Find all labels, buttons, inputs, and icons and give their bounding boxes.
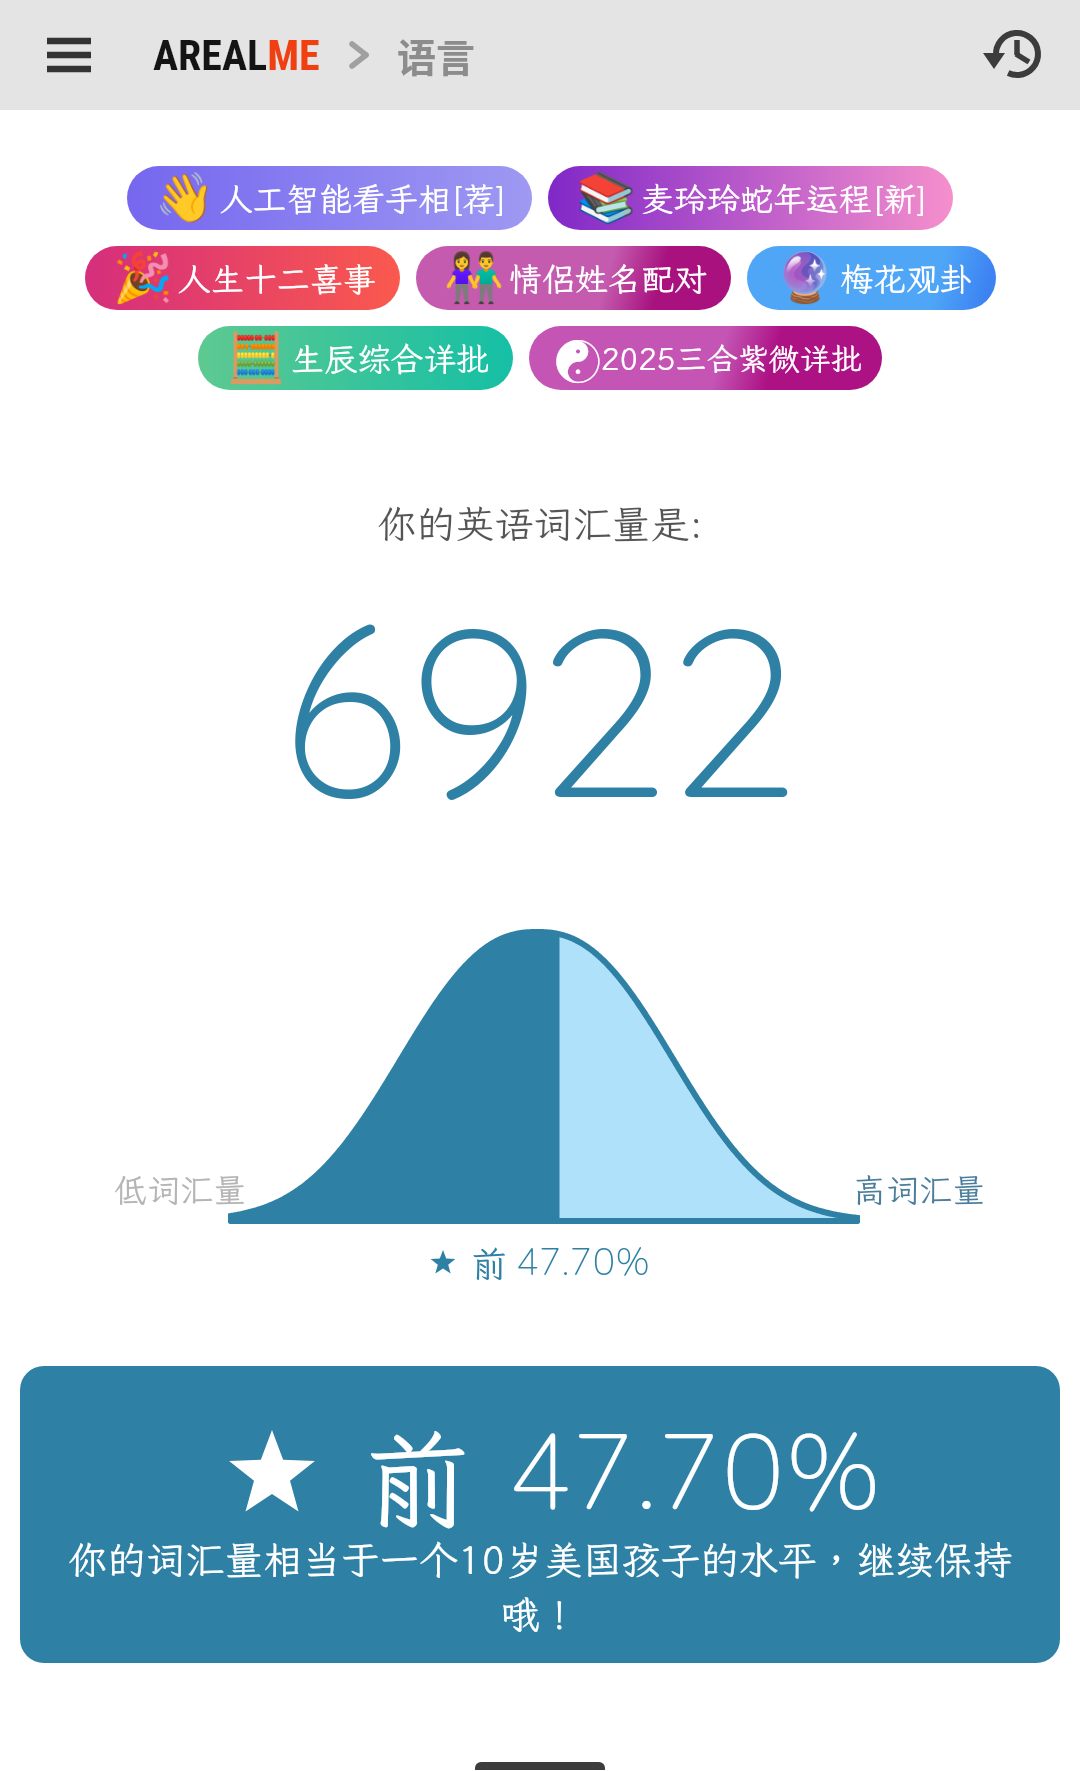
button[interactable]: 🎉 [85,246,400,310]
button[interactable]: 🔮 [747,246,996,310]
staticText: 前 [471,1240,508,1287]
staticText: 你的词汇量相当于一个10岁美国孩子的水平，继续保持哦！ [36,1534,1044,1640]
button[interactable]: ☯ [529,326,882,390]
staticText: 你的英语词汇量是: [0,498,1080,549]
button[interactable]: 🧮 [198,326,513,390]
staticText: 📚 [576,170,636,226]
staticText: 低词汇量 [114,1168,246,1211]
staticText: 麦玲玲蛇年运程[新] [641,177,929,220]
staticText: 人生十二喜事 [178,257,376,300]
staticText: 👫 [444,250,504,306]
staticText: AREALME [153,31,320,80]
staticText: 47.70% [516,1237,651,1289]
button[interactable]: 📚 [548,166,953,230]
staticText: ☯ [555,326,601,390]
staticText: 🔮 [775,250,835,306]
staticText: 6922 [0,560,1080,856]
staticText: 人工智能看手相[荐] [220,177,508,220]
staticText: 前 [364,1409,470,1549]
staticText: 2025三合紫微详批 [601,338,862,379]
staticText: 🧮 [226,330,286,386]
staticText: 生辰综合详批 [291,337,489,380]
staticText: 语言 [397,27,476,83]
staticText: 47.70% [508,1402,882,1547]
button[interactable]: 👫 [416,246,731,310]
staticText: 梅花观卦 [840,257,972,300]
staticText: 👋 [155,170,215,226]
button[interactable]: 👋 [127,166,532,230]
staticText: 高词汇量 [853,1168,985,1211]
staticText: 情侣姓名配对 [509,257,707,300]
staticText: 🎉 [113,250,173,306]
button[interactable]: Menu [29,15,109,95]
button[interactable]: History [976,15,1056,95]
